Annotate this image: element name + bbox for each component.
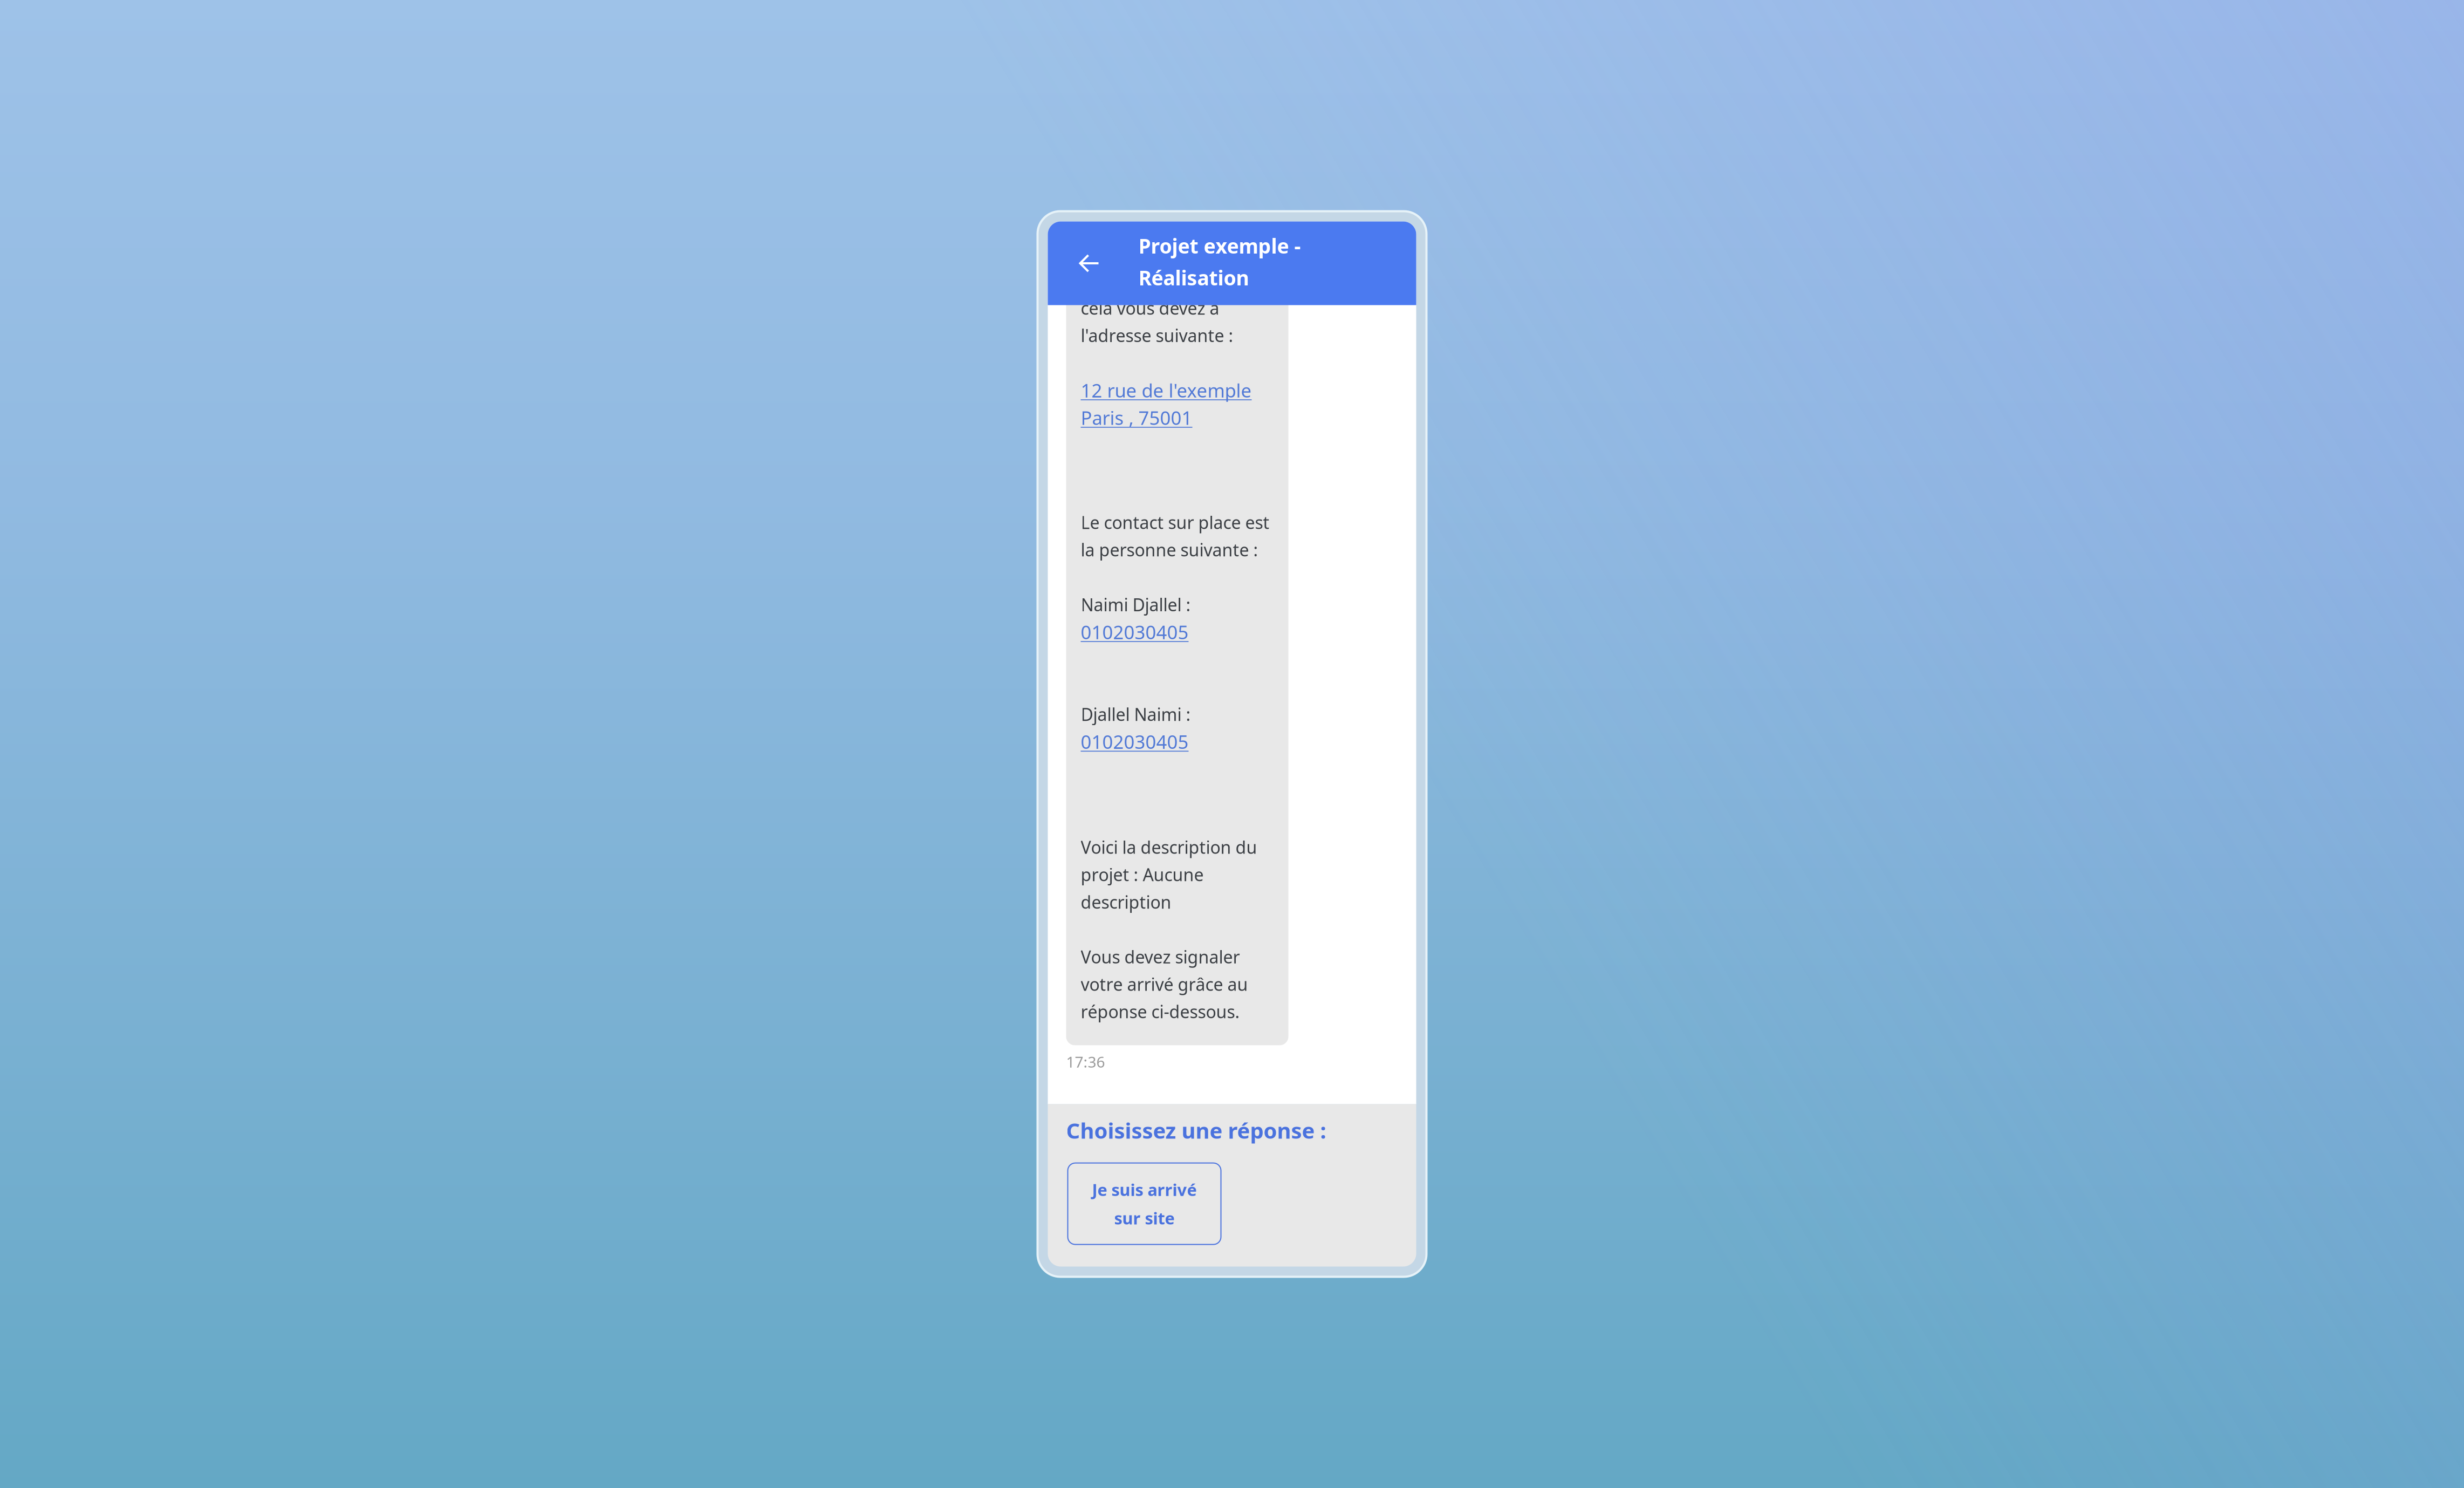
staticText: réponse ci-dessous. bbox=[1081, 1000, 1240, 1023]
button[interactable]: Paris , 75001 bbox=[1081, 404, 1192, 431]
staticText: sur site bbox=[1114, 1207, 1175, 1229]
button[interactable]: 0102030405 bbox=[1081, 728, 1189, 755]
staticText: Je suis arrivé bbox=[1092, 1179, 1197, 1200]
staticText: Choisissez une réponse : bbox=[1066, 1116, 1326, 1145]
staticText: Naimi Djallel : bbox=[1081, 593, 1191, 616]
staticText: Vous devez signaler bbox=[1081, 945, 1240, 968]
staticText: Projet exemple - bbox=[1138, 232, 1301, 259]
staticText: 12 rue de l'exemple bbox=[1081, 378, 1252, 403]
staticText: la personne suivante : bbox=[1081, 538, 1258, 561]
staticText: Réalisation bbox=[1138, 264, 1249, 291]
staticText: description bbox=[1081, 890, 1171, 913]
staticText: Le contact sur place est bbox=[1081, 511, 1269, 534]
staticText: 17:36 bbox=[1066, 1052, 1105, 1072]
button[interactable]: 0102030405 bbox=[1081, 618, 1189, 646]
staticText: l'adresse suivante : bbox=[1081, 324, 1233, 347]
staticText: 0102030405 bbox=[1081, 620, 1189, 644]
staticText: Paris , 75001 bbox=[1081, 405, 1192, 430]
staticText: votre arrivé grâce au bbox=[1081, 973, 1248, 996]
staticText: Voici la description du bbox=[1081, 836, 1257, 859]
button[interactable]: Back bbox=[1048, 221, 1138, 305]
staticText: 0102030405 bbox=[1081, 729, 1189, 754]
button[interactable]: 12 rue de l'exemple bbox=[1081, 377, 1252, 404]
staticText: projet : Aucune bbox=[1081, 863, 1204, 886]
staticText: cela vous devez a bbox=[1081, 297, 1219, 319]
button[interactable]: Je suis arrivé bbox=[1068, 1163, 1221, 1244]
staticText: Djallel Naimi : bbox=[1081, 703, 1191, 726]
